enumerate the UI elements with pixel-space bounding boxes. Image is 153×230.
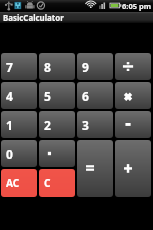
- button[interactable]: 3: [77, 111, 113, 138]
- button[interactable]: 5: [39, 82, 75, 109]
- staticText: 9: [82, 59, 89, 75]
- staticText: 0: [6, 146, 13, 162]
- button[interactable]: Subtract: [115, 111, 151, 138]
- staticText: 6:05 pm: [122, 1, 151, 11]
- button[interactable]: 7: [1, 53, 37, 80]
- button[interactable]: 6: [77, 82, 113, 109]
- staticText: 2: [44, 117, 51, 133]
- button[interactable]: Divide: [115, 53, 151, 80]
- button[interactable]: Add: [115, 140, 151, 197]
- staticText: 3: [82, 117, 89, 133]
- button[interactable]: Multiply: [115, 82, 151, 109]
- staticText: 6: [82, 88, 89, 104]
- staticText: C: [44, 176, 51, 190]
- staticText: AC: [6, 176, 20, 190]
- staticText: BasicCalculator: [3, 13, 64, 24]
- button[interactable]: 1: [1, 111, 37, 138]
- button[interactable]: 4: [1, 82, 37, 109]
- button[interactable]: 0: [1, 140, 37, 167]
- button[interactable]: AC: [1, 169, 37, 197]
- button[interactable]: Equals: [77, 140, 113, 197]
- button[interactable]: 2: [39, 111, 75, 138]
- button[interactable]: 8: [39, 53, 75, 80]
- staticText: 1: [6, 117, 13, 133]
- button[interactable]: 9: [77, 53, 113, 80]
- staticText: 7: [6, 59, 13, 75]
- staticText: 5: [44, 88, 51, 104]
- staticText: 4: [6, 88, 13, 104]
- button[interactable]: C: [39, 169, 75, 197]
- staticText: 8: [44, 59, 51, 75]
- button[interactable]: Decimal point: [39, 140, 75, 167]
